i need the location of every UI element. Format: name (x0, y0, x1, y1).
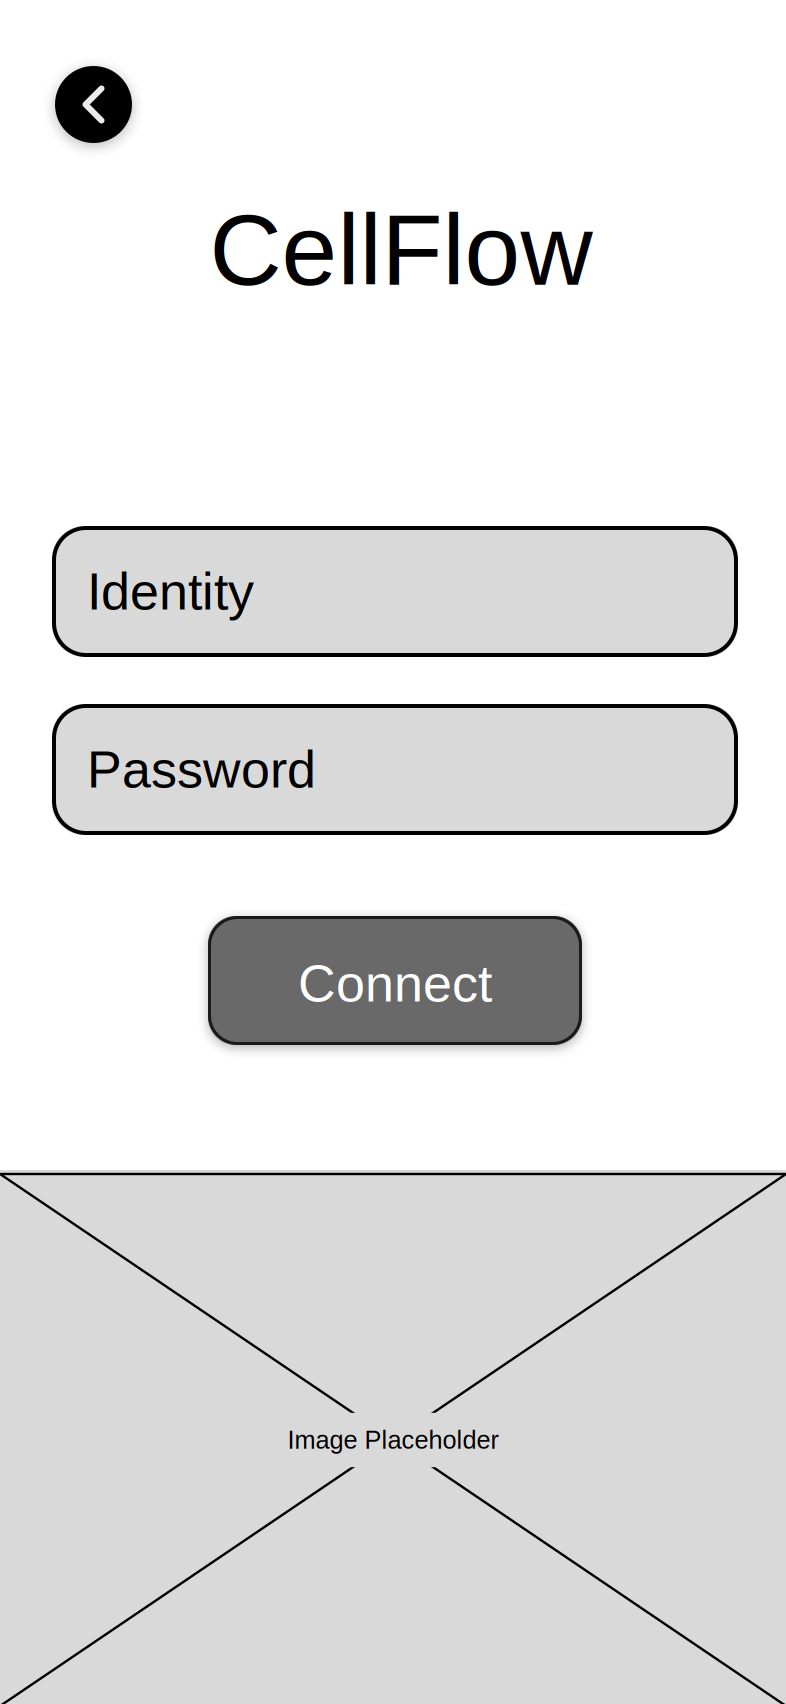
staticText: Identity (87, 562, 254, 621)
staticText: Image Placeholder (287, 1426, 498, 1454)
button[interactable]: Password (52, 704, 738, 835)
staticText: Connect (298, 954, 492, 1013)
staticText: Password (87, 740, 316, 799)
staticText: CellFlow (209, 194, 592, 306)
button[interactable]: Connect (208, 916, 582, 1045)
button[interactable]: Identity (52, 526, 738, 657)
button[interactable]: Back (55, 66, 132, 143)
